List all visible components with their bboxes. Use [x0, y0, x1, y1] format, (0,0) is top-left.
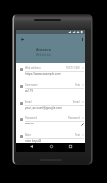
staticText: ••••••••	[25, 122, 34, 126]
button[interactable]: Edit	[80, 122, 84, 126]
staticText: TEXT (1/28)	[66, 66, 80, 70]
staticText: your_account@google.com	[25, 106, 62, 110]
staticText: Web site key	[36, 53, 52, 57]
staticText: Amazon	[36, 47, 52, 52]
staticText: Password	[68, 116, 80, 120]
button[interactable]: Home	[47, 144, 55, 152]
button[interactable]: Note	[16, 133, 85, 150]
button[interactable]: Username	[16, 83, 85, 100]
staticText: Email	[73, 100, 80, 104]
button[interactable]: Web address	[16, 66, 85, 83]
staticText: https://www.example.com	[25, 72, 61, 76]
staticText: Note	[25, 133, 31, 137]
staticText: Email	[25, 100, 32, 104]
staticText: Web address	[25, 66, 41, 70]
staticText: Password	[25, 116, 37, 120]
button[interactable]: More options	[79, 36, 85, 42]
button[interactable]: Back	[27, 144, 35, 152]
button[interactable]: Navigate up	[19, 36, 25, 42]
staticText: Text	[75, 83, 80, 87]
staticText: as119	[25, 89, 33, 93]
staticText: Text	[75, 133, 80, 137]
button[interactable]: Recent apps	[66, 144, 74, 152]
button[interactable]: Password	[16, 116, 85, 133]
button[interactable]: Email	[16, 100, 85, 117]
staticText: Username	[25, 83, 38, 87]
staticText: note keys43	[25, 139, 42, 143]
